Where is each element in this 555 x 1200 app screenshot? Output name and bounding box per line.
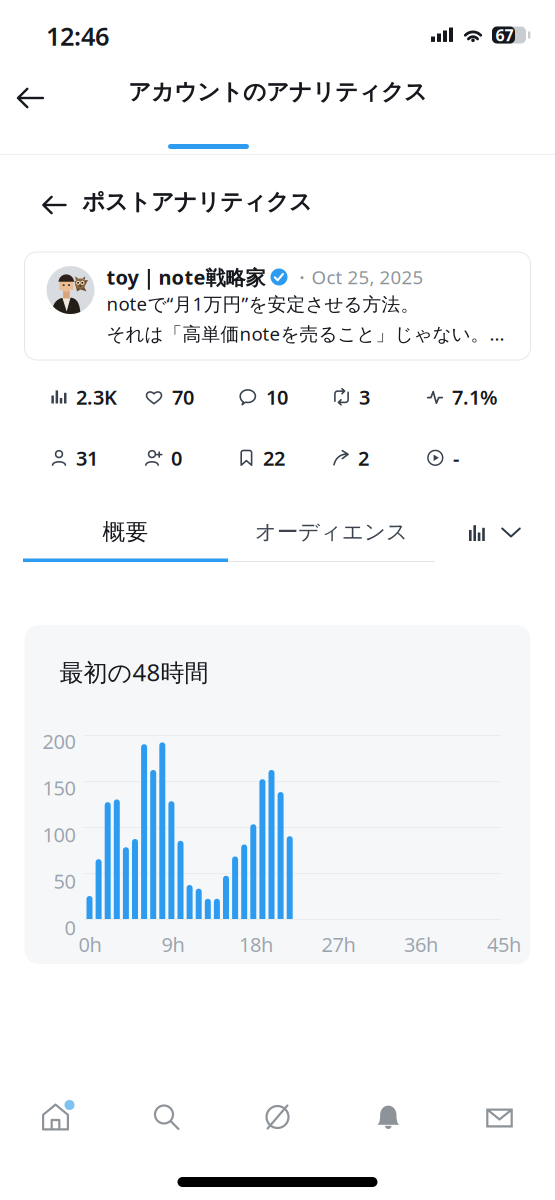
- button[interactable]: Home: [0, 1097, 111, 1137]
- staticText: 100: [42, 821, 75, 848]
- staticText: 0: [64, 914, 75, 941]
- staticText: 9h: [161, 931, 184, 958]
- button[interactable]: Chart options: [469, 508, 555, 556]
- staticText: 200: [42, 728, 75, 755]
- staticText: 36h: [404, 931, 438, 958]
- button[interactable]: Back: [0, 62, 58, 122]
- staticText: 2: [358, 445, 369, 471]
- staticText: 2.3K: [76, 384, 117, 410]
- staticText: 7.1%: [452, 384, 498, 410]
- staticText: 45h: [487, 931, 521, 958]
- staticText: ポストアナリティクス: [82, 188, 312, 216]
- button[interactable]: Back: [0, 155, 82, 231]
- button[interactable]: -: [427, 435, 521, 481]
- staticText: ・Oct 25, 2025: [292, 265, 423, 289]
- button[interactable]: 31: [51, 435, 145, 481]
- button[interactable]: Messages: [444, 1097, 555, 1137]
- button[interactable]: 2: [333, 435, 427, 481]
- button[interactable]: 10: [239, 374, 333, 420]
- button[interactable]: 70: [145, 374, 239, 420]
- staticText: 22: [263, 445, 285, 471]
- button[interactable]: 22: [239, 435, 333, 481]
- staticText: 3: [359, 384, 370, 410]
- staticText: -: [453, 445, 459, 471]
- button[interactable]: 概要: [23, 508, 228, 556]
- staticText: 12:46: [46, 19, 109, 53]
- staticText: 0h: [78, 931, 101, 958]
- button[interactable]: Search: [111, 1097, 222, 1137]
- staticText: 150: [42, 775, 75, 801]
- button[interactable]: Notifications: [333, 1097, 444, 1137]
- staticText: それは「高単価noteを売ること」じゃない。...: [106, 321, 504, 346]
- staticText: 31: [76, 445, 98, 471]
- staticText: toy｜note戦略家: [106, 264, 265, 290]
- staticText: 67: [495, 24, 513, 46]
- button[interactable]: 0: [145, 435, 239, 481]
- staticText: 0: [171, 445, 182, 471]
- button[interactable]: 7.1%: [427, 374, 521, 420]
- staticText: 50: [53, 868, 75, 894]
- staticText: 概要: [102, 518, 148, 546]
- staticText: オーディエンス: [255, 519, 408, 545]
- staticText: 10: [266, 384, 288, 410]
- button[interactable]: 3: [333, 374, 427, 420]
- staticText: アカウントのアナリティクス: [128, 78, 427, 106]
- button[interactable]: Compose: [222, 1097, 333, 1137]
- staticText: 18h: [239, 931, 273, 958]
- staticText: 70: [172, 384, 194, 410]
- staticText: 最初の48時間: [59, 656, 208, 688]
- button[interactable]: toy｜note戦略家: [24, 252, 530, 360]
- staticText: noteで“月1万円”を安定させる方法。: [106, 291, 419, 316]
- staticText: 27h: [321, 931, 355, 958]
- button[interactable]: 2.3K: [51, 374, 145, 420]
- button[interactable]: オーディエンス: [228, 508, 435, 556]
